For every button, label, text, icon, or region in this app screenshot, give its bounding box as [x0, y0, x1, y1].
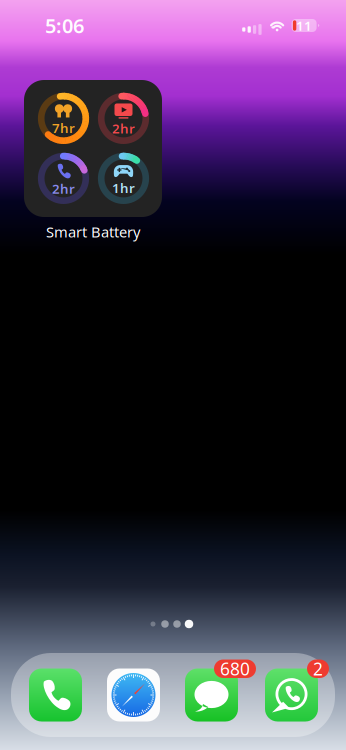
staticText: 680 [220, 657, 250, 680]
staticText: 2 [313, 657, 323, 680]
button[interactable]: 7hr [24, 80, 162, 217]
button[interactable]: Messages [185, 668, 238, 721]
staticText: 5:06 [45, 12, 84, 39]
button[interactable]: Phone [29, 668, 82, 721]
staticText: 11 [296, 17, 312, 34]
staticText: 2hr [52, 180, 75, 197]
staticText: 1hr [112, 179, 135, 197]
staticText: 2hr [112, 119, 135, 137]
button[interactable]: Safari [107, 668, 160, 721]
staticText: 7hr [52, 119, 75, 137]
staticText: Smart Battery [46, 222, 140, 241]
button[interactable]: WhatsApp [265, 668, 318, 721]
